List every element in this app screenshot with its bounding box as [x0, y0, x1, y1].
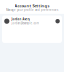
staticText: Jordan Avery	[11, 17, 29, 21]
staticText: jordan@example.com	[11, 21, 38, 25]
staticText: Account Settings	[14, 3, 49, 8]
staticText: Manage your profile and preferences	[6, 8, 58, 12]
